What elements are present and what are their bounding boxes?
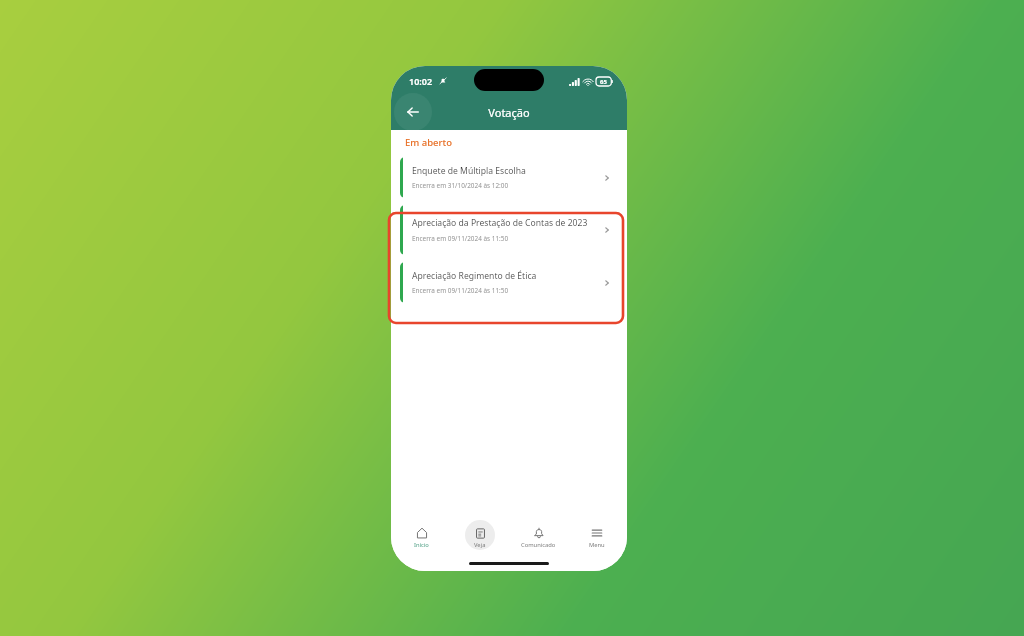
staticText: Encerra em 09/11/2024 às 11:50 bbox=[412, 286, 509, 295]
staticText: Comunicado bbox=[521, 541, 556, 549]
staticText: Menu bbox=[589, 541, 605, 549]
button[interactable]: Apreciação da Prestação de Contas de 202… bbox=[400, 205, 618, 255]
staticText: 65 bbox=[600, 78, 607, 86]
staticText: Veja bbox=[474, 541, 486, 549]
button[interactable]: Início bbox=[393, 519, 449, 557]
button[interactable]: Veja bbox=[452, 519, 508, 557]
staticText: Início bbox=[414, 541, 429, 549]
staticText: Encerra em 09/11/2024 às 11:50 bbox=[412, 234, 509, 243]
staticText: Apreciação Regimento de Ética bbox=[412, 270, 537, 282]
button[interactable]: Voltar bbox=[398, 97, 428, 127]
button[interactable]: Comunicado bbox=[510, 519, 566, 557]
staticText: Encerra em 31/10/2024 às 12:00 bbox=[412, 181, 509, 190]
staticText: Enquete de Múltipla Escolha bbox=[412, 165, 526, 177]
staticText: Votação bbox=[488, 105, 530, 120]
button[interactable]: Apreciação Regimento de Ética bbox=[400, 262, 618, 303]
button[interactable]: Enquete de Múltipla Escolha bbox=[400, 157, 618, 198]
staticText: 10:02 bbox=[409, 75, 433, 87]
staticText: Em aberto bbox=[405, 136, 452, 149]
staticText: Apreciação da Prestação de Contas de 202… bbox=[412, 217, 588, 229]
button[interactable]: Menu bbox=[569, 519, 625, 557]
